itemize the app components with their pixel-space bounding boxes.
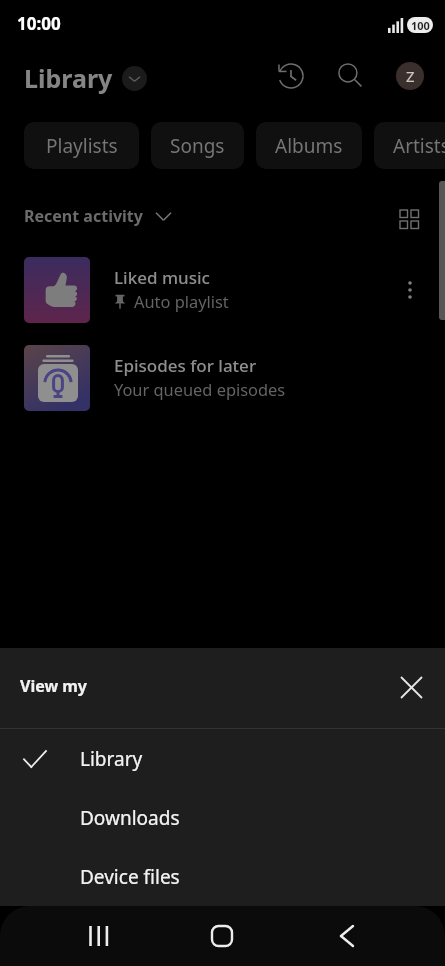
staticText: Artists — [393, 133, 445, 159]
button[interactable]: Account — [396, 62, 424, 90]
button[interactable]: Recent activity — [24, 202, 171, 230]
button[interactable]: Library — [0, 729, 445, 788]
button[interactable]: Back — [316, 906, 378, 966]
staticText: Library — [80, 746, 143, 772]
button[interactable]: Albums — [256, 122, 362, 169]
button[interactable]: Library — [24, 58, 147, 98]
staticText: 10:00 — [17, 12, 61, 35]
button[interactable]: Artists — [374, 122, 445, 169]
button[interactable]: Device files — [0, 847, 445, 906]
staticText: Z — [406, 66, 415, 86]
button[interactable]: More options — [393, 273, 427, 307]
staticText: Liked music — [114, 266, 210, 289]
staticText: 100 — [411, 18, 430, 33]
button[interactable]: History — [269, 54, 313, 98]
button[interactable]: Downloads — [0, 788, 445, 847]
staticText: View my — [20, 675, 88, 697]
staticText: Episodes for later — [114, 354, 257, 377]
staticText: Your queued episodes — [114, 378, 286, 400]
button[interactable]: Playlists — [24, 122, 139, 169]
staticText: Downloads — [80, 805, 180, 831]
button[interactable]: Recents — [68, 906, 130, 966]
staticText: Device files — [80, 864, 180, 890]
staticText: Auto playlist — [134, 290, 229, 312]
button[interactable]: Episodes for later — [0, 334, 445, 422]
button[interactable]: Songs — [151, 122, 244, 169]
button[interactable]: Search — [328, 54, 372, 98]
staticText: Playlists — [46, 133, 118, 159]
staticText: Songs — [170, 133, 225, 159]
button[interactable]: Home — [191, 906, 253, 966]
staticText: Recent activity — [24, 205, 143, 227]
staticText: Library — [24, 61, 113, 95]
button[interactable]: Grid view — [393, 203, 425, 235]
button[interactable]: Liked music — [0, 246, 445, 334]
button[interactable]: Close — [390, 666, 432, 708]
staticText: Albums — [275, 133, 343, 159]
